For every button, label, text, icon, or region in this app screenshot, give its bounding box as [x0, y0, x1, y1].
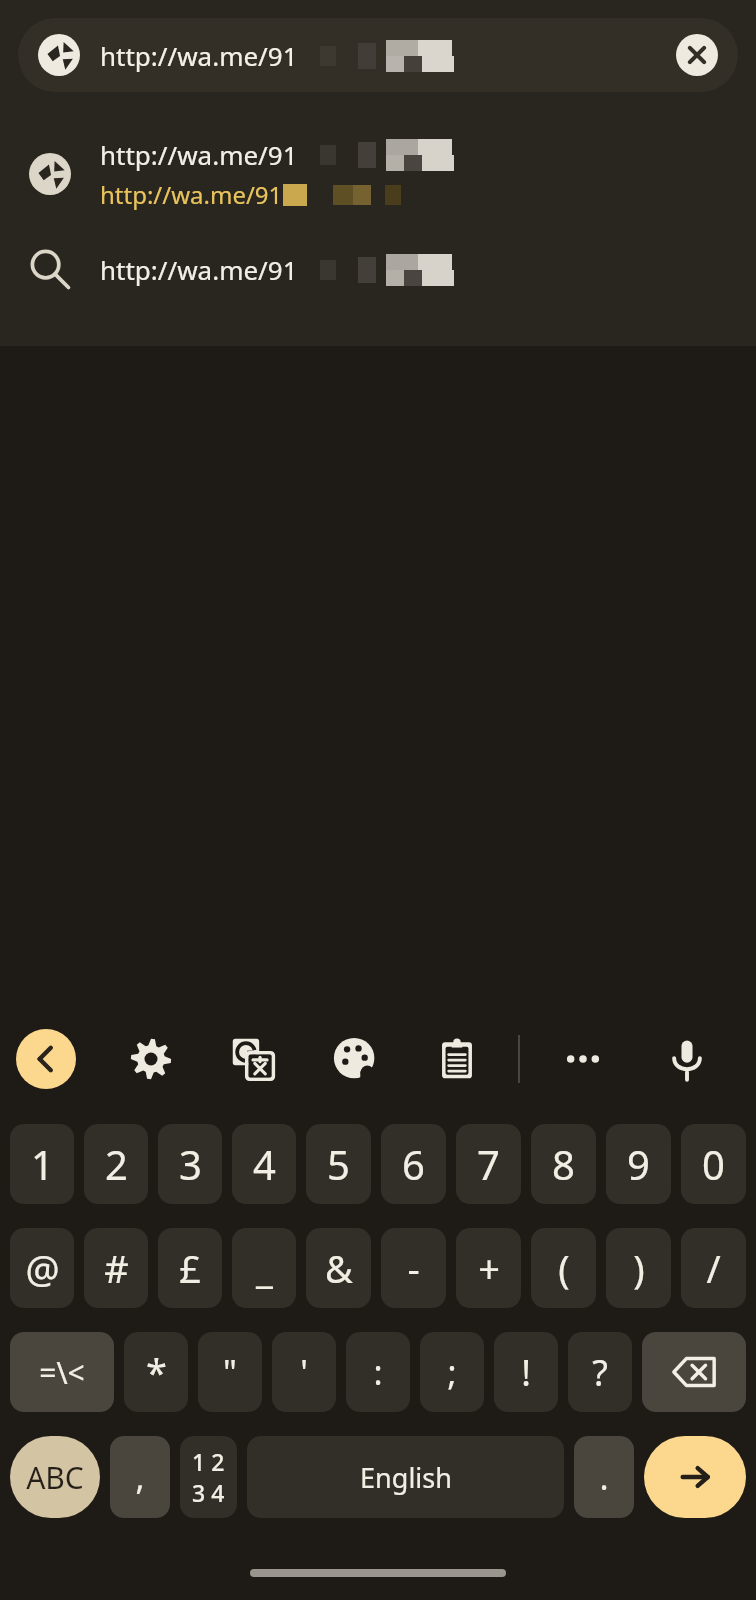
- staticText: 3 4: [192, 1477, 225, 1508]
- button[interactable]: *: [124, 1332, 188, 1412]
- button[interactable]: http://wa.me/91: [0, 226, 756, 312]
- staticText: ): [633, 1242, 645, 1294]
- staticText: .: [599, 1454, 609, 1500]
- button[interactable]: ": [198, 1332, 262, 1412]
- button[interactable]: ;: [420, 1332, 484, 1412]
- button[interactable]: Clipboard: [420, 1022, 494, 1096]
- button[interactable]: 6: [381, 1124, 446, 1204]
- staticText: ': [300, 1349, 308, 1395]
- button[interactable]: ?: [568, 1332, 632, 1412]
- button[interactable]: @: [10, 1228, 74, 1308]
- button[interactable]: +: [456, 1228, 521, 1308]
- staticText: 5: [327, 1137, 350, 1191]
- staticText: http://wa.me/91: [100, 137, 298, 172]
- staticText: 1: [31, 1137, 54, 1191]
- button[interactable]: More options: [546, 1022, 620, 1096]
- button[interactable]: .: [574, 1436, 634, 1518]
- button[interactable]: 3: [158, 1124, 222, 1204]
- staticText: 8: [552, 1137, 575, 1191]
- button[interactable]: =\<: [10, 1332, 114, 1412]
- staticText: 1 2: [192, 1446, 225, 1477]
- button[interactable]: 1: [10, 1124, 74, 1204]
- button[interactable]: Theme: [318, 1022, 392, 1096]
- button[interactable]: :: [346, 1332, 410, 1412]
- staticText: http://wa.me/91: [100, 38, 298, 73]
- button[interactable]: Translate: [216, 1022, 290, 1096]
- staticText: 4: [253, 1137, 276, 1191]
- staticText: ": [223, 1349, 237, 1395]
- staticText: 6: [402, 1137, 425, 1191]
- staticText: 3: [179, 1137, 202, 1191]
- staticText: =\<: [39, 1352, 85, 1393]
- button[interactable]: Back: [16, 1029, 76, 1089]
- button[interactable]: Enter: [644, 1436, 746, 1518]
- staticText: English: [360, 1459, 452, 1496]
- button[interactable]: 9: [606, 1124, 671, 1204]
- button[interactable]: 0: [681, 1124, 746, 1204]
- staticText: !: [521, 1348, 531, 1397]
- button[interactable]: Voice input: [650, 1022, 724, 1096]
- staticText: ABC: [26, 1457, 84, 1498]
- button[interactable]: English: [247, 1436, 564, 1518]
- staticText: 0: [702, 1137, 725, 1191]
- staticText: (: [558, 1242, 570, 1294]
- button[interactable]: 4: [232, 1124, 296, 1204]
- staticText: £: [179, 1242, 201, 1294]
- staticText: 7: [477, 1137, 500, 1191]
- button[interactable]: !: [494, 1332, 558, 1412]
- button[interactable]: 2: [84, 1124, 148, 1204]
- staticText: &: [325, 1242, 353, 1294]
- staticText: +: [478, 1242, 500, 1294]
- button[interactable]: ': [272, 1332, 336, 1412]
- button[interactable]: 7: [456, 1124, 521, 1204]
- staticText: /: [706, 1242, 721, 1294]
- button[interactable]: -: [381, 1228, 446, 1308]
- staticText: 9: [627, 1137, 650, 1191]
- button[interactable]: Settings: [114, 1022, 188, 1096]
- button[interactable]: ABC: [10, 1436, 100, 1518]
- button[interactable]: ): [606, 1228, 671, 1308]
- button[interactable]: _: [232, 1228, 296, 1308]
- button[interactable]: 8: [531, 1124, 596, 1204]
- staticText: ?: [592, 1348, 608, 1397]
- staticText: *: [146, 1346, 167, 1398]
- button[interactable]: #: [84, 1228, 148, 1308]
- staticText: ;: [447, 1349, 457, 1395]
- staticText: 2: [105, 1137, 128, 1191]
- button[interactable]: ,: [110, 1436, 170, 1518]
- staticText: -: [407, 1242, 420, 1294]
- button[interactable]: (: [531, 1228, 596, 1308]
- button[interactable]: £: [158, 1228, 222, 1308]
- staticText: http://wa.me/91: [100, 178, 283, 211]
- button[interactable]: http://wa.me/91: [18, 18, 738, 92]
- button[interactable]: 5: [306, 1124, 371, 1204]
- button[interactable]: Numbers: [180, 1436, 237, 1518]
- button[interactable]: /: [681, 1228, 746, 1308]
- staticText: :: [373, 1349, 383, 1395]
- staticText: #: [104, 1242, 129, 1294]
- staticText: _: [256, 1242, 273, 1294]
- staticText: @: [25, 1242, 60, 1294]
- button[interactable]: Backspace: [642, 1332, 746, 1412]
- button[interactable]: http://wa.me/91: [0, 122, 756, 226]
- button[interactable]: &: [306, 1228, 371, 1308]
- button[interactable]: Clear: [656, 34, 738, 76]
- staticText: ,: [135, 1454, 145, 1500]
- staticText: http://wa.me/91: [100, 252, 298, 287]
